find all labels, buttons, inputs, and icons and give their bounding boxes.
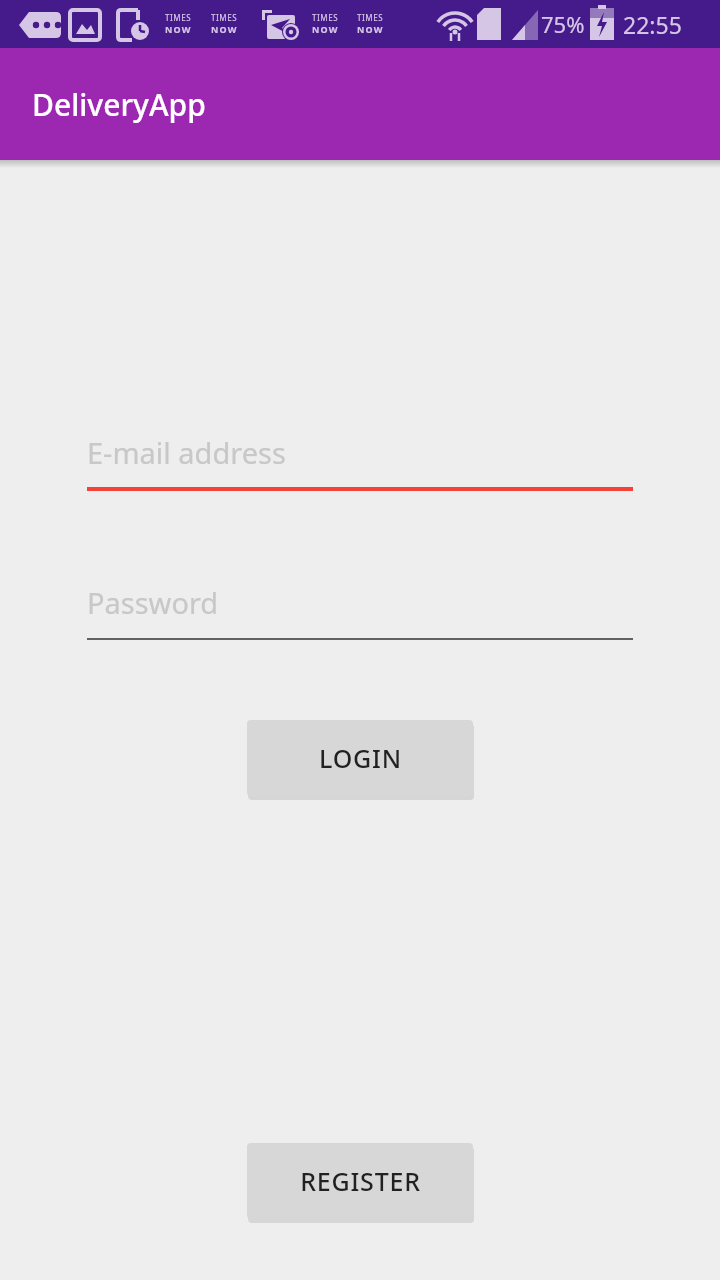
staticText: DeliveryApp [32,84,206,125]
staticText: TIMES [211,12,238,23]
staticText: LOGIN [319,741,402,775]
staticText: NOW [211,23,238,35]
staticText: 22:55 [623,9,682,40]
button[interactable]: LOGIN [247,720,473,796]
staticText: 75% [541,9,585,39]
staticText: TIMES [165,12,192,23]
button[interactable]: REGISTER [247,1143,473,1219]
staticText: TIMES [312,12,339,23]
button[interactable]: E-mail address [87,433,633,491]
staticText: NOW [165,23,192,35]
staticText: NOW [312,23,339,35]
staticText: REGISTER [300,1164,421,1198]
staticText: Password [87,583,219,622]
staticText: E-mail address [87,433,286,472]
staticText: TIMES [357,12,384,23]
staticText: NOW [357,23,384,35]
button[interactable]: Password [87,583,633,640]
